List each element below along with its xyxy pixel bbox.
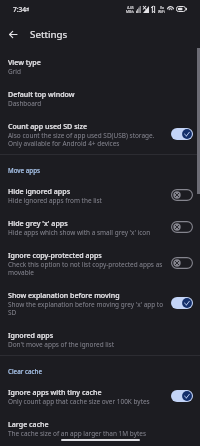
button[interactable]: Default top window <box>0 82 200 114</box>
button[interactable]: Count app used SD size <box>0 114 200 154</box>
button[interactable]: Ignore copy-protected apps <box>0 243 200 283</box>
staticText: Show explanation before moving <box>8 290 120 300</box>
staticText: Hide grey 'x' apps <box>8 218 68 228</box>
staticText: WiFi <box>158 9 165 13</box>
button[interactable]: Ignored apps <box>0 323 200 355</box>
staticText: Hide apps which show with a small grey '… <box>8 228 151 237</box>
staticText: Only count app that cache size over 100K… <box>8 397 150 406</box>
staticText: View type <box>8 57 41 67</box>
button[interactable]: Disabled, toggle on <box>171 189 193 201</box>
button[interactable]: Large cache <box>0 412 200 444</box>
staticText: Check this option to not list copy-prote… <box>8 260 163 277</box>
staticText: Show the explanation before moving grey … <box>8 300 164 317</box>
button[interactable]: Hide grey 'x' apps <box>0 211 200 243</box>
button[interactable]: View type <box>0 50 200 82</box>
staticText: Ignore apps with tiny cache <box>8 387 102 397</box>
button[interactable]: Navigate up <box>2 23 24 45</box>
staticText: Hide ignored apps <box>8 186 71 196</box>
staticText: Default top window <box>8 89 75 99</box>
staticText: MB/s <box>126 9 134 13</box>
staticText: Ignore copy-protected apps <box>8 250 102 260</box>
button[interactable]: Enabled, toggle off <box>171 297 193 309</box>
button[interactable]: Show explanation before moving <box>0 283 200 323</box>
button[interactable]: Disabled, toggle on <box>171 221 193 233</box>
staticText: Count app used SD size <box>8 121 87 131</box>
staticText: Settings <box>30 28 68 41</box>
button[interactable]: Ignore apps with tiny cache <box>0 380 200 412</box>
staticText: Dashboard <box>8 99 42 108</box>
staticText: Grid <box>8 67 21 76</box>
staticText: Vo <box>160 5 164 9</box>
staticText: Clear cache <box>8 367 42 375</box>
staticText: 4.45 <box>127 5 134 9</box>
staticText: 7:34 <box>13 5 27 14</box>
button[interactable]: Disabled, toggle on <box>171 257 193 269</box>
button[interactable]: Enabled, toggle off <box>171 390 193 402</box>
staticText: Move apps <box>8 166 40 174</box>
staticText: Large cache <box>8 419 49 429</box>
staticText: Hide ignored apps from the list <box>8 196 102 205</box>
staticText: Don't move apps of the ignored list <box>8 340 115 349</box>
staticText: The cache size of an app larger than 1M … <box>8 429 146 438</box>
button[interactable]: Enabled, toggle off <box>171 128 193 140</box>
button[interactable]: Hide ignored apps <box>0 179 200 211</box>
staticText: Also count the size of app used SD(USB) … <box>8 131 155 148</box>
staticText: Ignored apps <box>8 330 54 340</box>
